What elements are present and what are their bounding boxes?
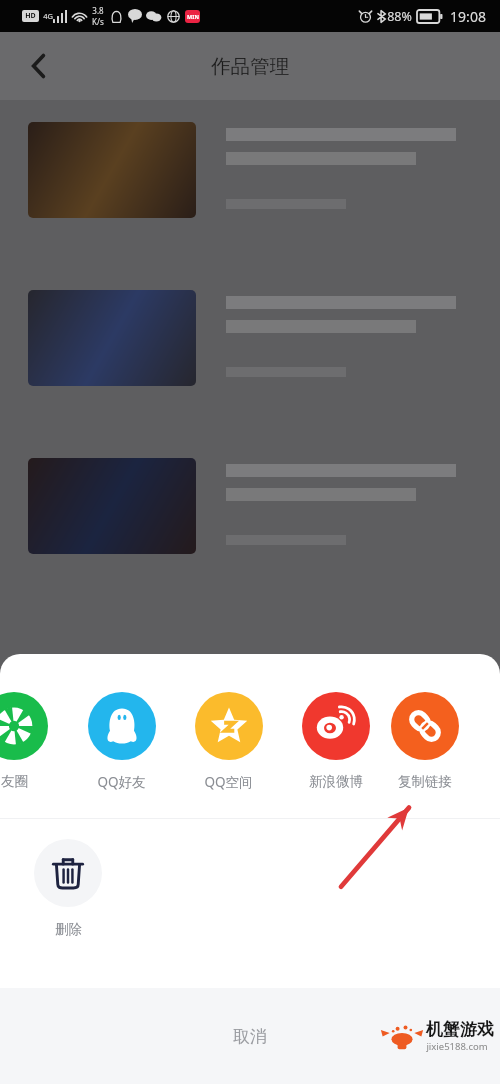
staticText: K/s xyxy=(92,16,104,27)
staticText: 新浪微博 xyxy=(309,773,363,790)
button[interactable]: 返回 xyxy=(14,42,62,90)
button[interactable]: 删除 xyxy=(34,839,102,938)
staticText: 取消 xyxy=(233,1026,267,1047)
button[interactable]: 友圈 xyxy=(0,692,68,790)
staticText: jixie5188.com xyxy=(426,1040,488,1053)
staticText: 删除 xyxy=(55,921,82,938)
staticText: QQ好友 xyxy=(97,773,146,791)
staticText: 4G xyxy=(43,11,53,21)
button[interactable]: QQ好友 xyxy=(68,692,175,791)
button[interactable]: 取消 xyxy=(0,988,500,1084)
staticText: 作品管理 xyxy=(211,54,289,79)
button[interactable]: 复制链接 xyxy=(389,692,460,790)
button[interactable]: QQ空间 xyxy=(175,692,282,791)
staticText: 机蟹游戏 xyxy=(426,1019,494,1040)
staticText: QQ空间 xyxy=(204,773,253,791)
staticText: 88% xyxy=(387,8,412,25)
staticText: 19:08 xyxy=(450,7,486,26)
staticText: 复制链接 xyxy=(398,773,452,790)
staticText: MIN xyxy=(187,13,199,20)
button[interactable]: 新浪微博 xyxy=(282,692,389,790)
staticText: 3.8 xyxy=(92,5,104,16)
staticText: HD xyxy=(25,11,36,21)
staticText: 友圈 xyxy=(1,773,28,790)
